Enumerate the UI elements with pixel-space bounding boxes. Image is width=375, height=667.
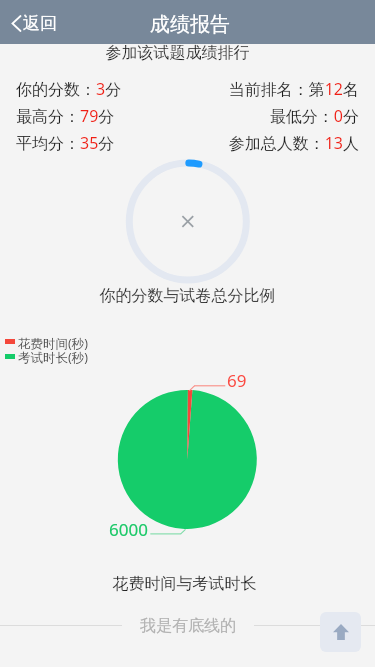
staticText: 参加总人数：13人 [187,132,359,154]
staticText: 最低分：0分 [187,105,359,127]
staticText: 最高分：79分 [16,105,187,127]
staticText: 平均分：35分 [16,132,187,154]
staticText: 6000 [109,518,148,541]
button[interactable]: 返回 [0,0,80,44]
staticText: 你的分数：3分 [16,78,187,100]
staticText: 花费时间与考试时长 [0,574,372,594]
staticText: 69 [227,369,247,392]
staticText: 花费时间(秒) [18,335,89,352]
staticText: 当前排名：第12名 [187,78,359,100]
staticText: 你的分数与试卷总分比例 [0,286,375,306]
staticText: 我是有底线的 [140,616,236,636]
button[interactable]: Scroll to top [320,612,361,652]
staticText: 成绩报告 [150,12,230,37]
staticText: 考试时长(秒) [18,349,89,366]
staticText: 参加该试题成绩排行 [0,43,365,63]
staticText: 返回 [23,13,57,34]
